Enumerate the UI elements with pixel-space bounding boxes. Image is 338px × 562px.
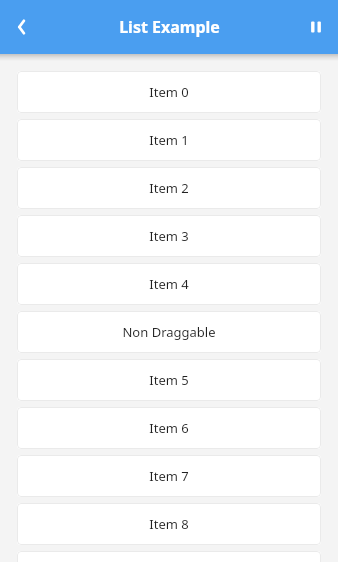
staticText: Item 7 <box>149 467 189 485</box>
button[interactable]: Item 8 <box>17 503 321 545</box>
button[interactable]: Pause <box>294 0 338 54</box>
staticText: Item 1 <box>149 131 189 149</box>
staticText: Item 5 <box>149 371 189 389</box>
button[interactable]: Item 0 <box>17 71 321 113</box>
button[interactable]: Item 5 <box>17 359 321 401</box>
button[interactable]: Item 7 <box>17 455 321 497</box>
button[interactable]: Non Draggable <box>17 311 321 353</box>
button[interactable]: Item 6 <box>17 407 321 449</box>
staticText: Item 4 <box>149 275 189 293</box>
staticText: Item 3 <box>149 227 189 245</box>
staticText: Item 0 <box>149 83 189 101</box>
button[interactable]: Item 3 <box>17 215 321 257</box>
staticText: Item 2 <box>149 179 189 197</box>
staticText: Non Draggable <box>122 323 216 341</box>
button[interactable]: Item 4 <box>17 263 321 305</box>
staticText: Item 6 <box>149 419 189 437</box>
button[interactable]: Item 1 <box>17 119 321 161</box>
button[interactable]: Back <box>0 0 44 54</box>
staticText: List Example <box>119 16 220 38</box>
staticText: Item 8 <box>149 515 189 533</box>
button[interactable]: Item 9 <box>17 551 321 562</box>
button[interactable]: Item 2 <box>17 167 321 209</box>
